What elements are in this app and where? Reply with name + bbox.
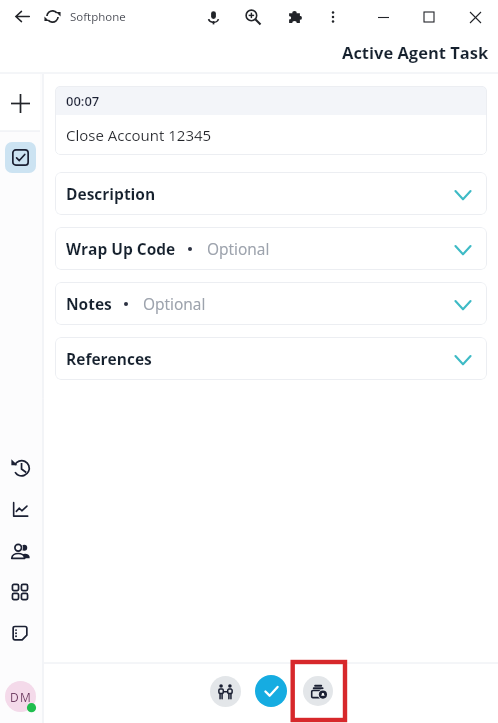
button[interactable]: Description xyxy=(55,172,487,215)
button[interactable]: Back xyxy=(9,3,36,30)
button[interactable]: References xyxy=(55,337,487,380)
button[interactable]: Notes xyxy=(55,282,487,325)
button[interactable]: Contacts xyxy=(5,536,35,566)
button[interactable]: Wrap Up Code xyxy=(55,227,487,270)
button[interactable]: Tasks xyxy=(5,142,36,173)
button[interactable]: Consult xyxy=(210,676,241,707)
button[interactable]: Profile DM xyxy=(5,681,36,712)
button[interactable]: Extensions xyxy=(281,4,307,30)
staticText: Description xyxy=(66,183,156,204)
staticText: Notes xyxy=(66,293,112,314)
button[interactable]: Maximize xyxy=(416,4,442,30)
staticText: DM xyxy=(10,689,32,705)
staticText: Optional xyxy=(143,293,206,314)
button[interactable]: Analytics xyxy=(5,494,35,524)
button[interactable]: Notes xyxy=(5,618,35,648)
button[interactable]: Apps xyxy=(5,577,35,607)
button[interactable]: Voice search xyxy=(200,4,226,30)
staticText: Close Account 12345 xyxy=(66,125,212,145)
button[interactable]: Add xyxy=(0,74,40,131)
button[interactable]: Complete task xyxy=(255,675,287,707)
button[interactable]: History xyxy=(5,452,35,482)
button[interactable]: Close xyxy=(462,4,488,30)
staticText: References xyxy=(66,348,152,369)
button[interactable]: Zoom in xyxy=(240,4,266,30)
button[interactable]: Reload xyxy=(39,3,66,30)
button[interactable]: Minimize xyxy=(370,4,396,30)
staticText: Optional xyxy=(207,238,270,259)
staticText: Softphone xyxy=(70,9,126,25)
staticText: 00:07 xyxy=(66,92,100,110)
staticText: Wrap Up Code xyxy=(66,238,176,259)
button[interactable]: Hold xyxy=(303,676,333,706)
staticText: Active Agent Task xyxy=(342,41,489,63)
button[interactable]: More options xyxy=(320,4,346,30)
button[interactable]: 00:07 xyxy=(55,86,487,155)
